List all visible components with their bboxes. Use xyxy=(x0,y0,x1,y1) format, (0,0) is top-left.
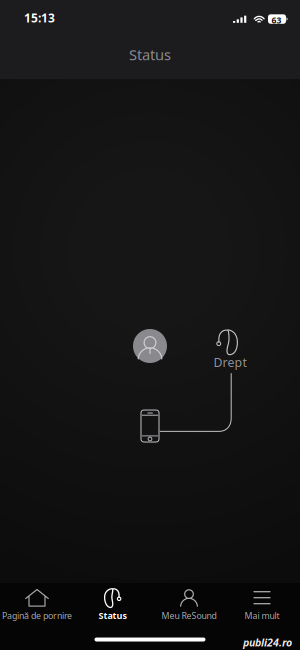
staticText: 63 xyxy=(272,14,282,26)
staticText: publi24.ro xyxy=(243,635,292,649)
button[interactable]: Pagină de pornire xyxy=(0,583,77,627)
staticText: Meu ReSound xyxy=(161,609,216,621)
staticText: Status xyxy=(98,609,127,622)
staticText: Pagină de pornire xyxy=(2,609,72,621)
staticText: Mai mult xyxy=(244,609,279,621)
button[interactable]: Status xyxy=(73,583,153,627)
staticText: 15:13 xyxy=(24,10,55,26)
button[interactable]: Mai mult xyxy=(222,583,300,627)
staticText: Drept xyxy=(213,354,246,371)
button[interactable]: Meu ReSound xyxy=(149,583,229,627)
staticText: Status xyxy=(129,44,171,64)
